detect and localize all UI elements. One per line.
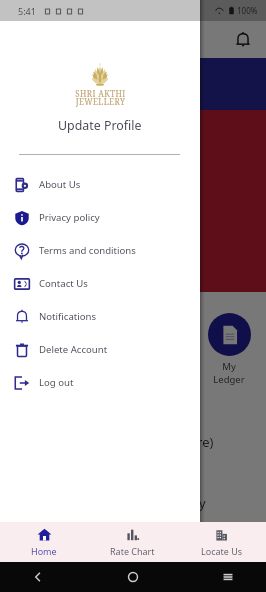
staticText: Contact Us [39, 277, 88, 290]
button[interactable]: Contact Us [0, 267, 200, 300]
button[interactable]: Privacy policy [0, 201, 200, 234]
button[interactable]: Update Profile [0, 116, 200, 134]
button[interactable]: Delete Account [0, 333, 200, 366]
staticText: Home [31, 545, 57, 557]
button[interactable]: Schemes [69, 313, 133, 373]
staticText: Special Offers (festive offer here) [14, 433, 214, 451]
button[interactable]: Log out [0, 366, 200, 399]
staticText: Delete Account [39, 343, 108, 356]
staticText: Update Profile [58, 117, 142, 134]
button[interactable]: Home [0, 522, 88, 562]
staticText: Silver Rate : 88.00 / Silver [12, 91, 141, 106]
staticText: SHRI AKTHI JEWELLERY [75, 88, 126, 107]
button[interactable]: Recent apps [220, 569, 236, 585]
button[interactable]: My Orders [5, 313, 69, 386]
staticText: My Orders [22, 360, 53, 386]
button[interactable]: Back [30, 569, 46, 585]
staticText: 100% [237, 5, 258, 16]
staticText: Locate Us [201, 545, 243, 557]
staticText: Welcome to Shri Akthi Jewellery [14, 494, 206, 512]
staticText: 5:41 [18, 5, 36, 17]
button[interactable]: Rate Chart [88, 522, 177, 562]
staticText: About Us [39, 178, 81, 191]
staticText: My Ledger [213, 360, 245, 386]
staticText: Terms and conditions [39, 244, 136, 257]
staticText: Privacy policy [39, 211, 100, 224]
button[interactable]: Notifications [234, 31, 252, 49]
button[interactable]: About Us [0, 168, 200, 201]
button[interactable]: Locate Us [177, 522, 266, 562]
button[interactable]: Terms and conditions [0, 234, 200, 267]
staticText: Rate Chart [110, 545, 155, 557]
staticText: Gold Rate 22K : 6,540.40 [12, 67, 183, 87]
staticText: Log out [39, 376, 74, 389]
staticText: Notifications [39, 310, 97, 323]
button[interactable]: My Ledger [197, 313, 261, 386]
button[interactable]: Notifications [0, 300, 200, 333]
button[interactable]: Home [125, 569, 141, 585]
